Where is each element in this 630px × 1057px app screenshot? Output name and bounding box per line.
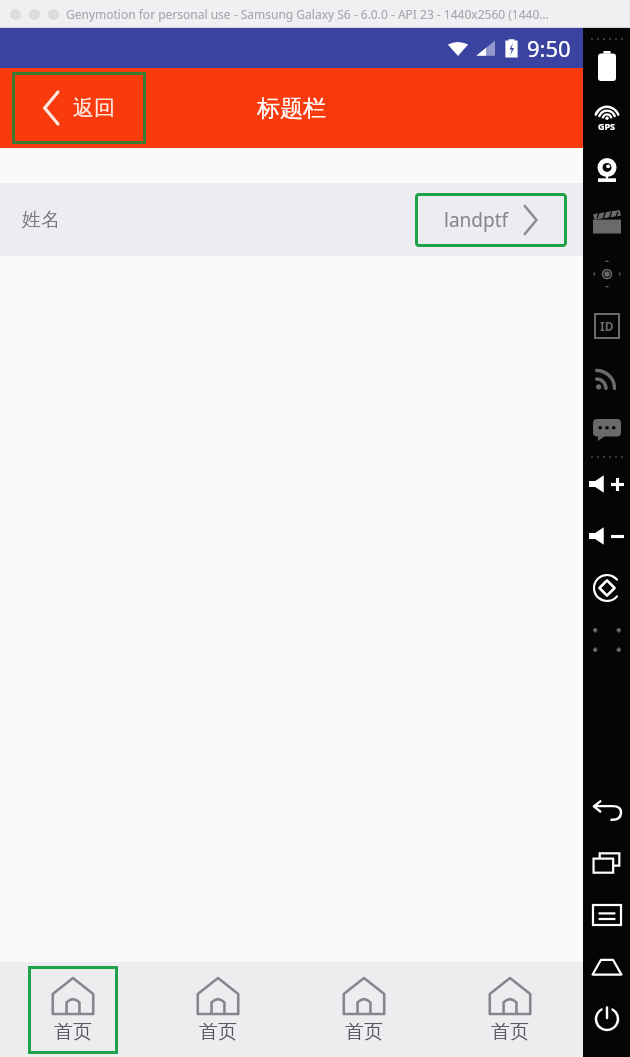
button[interactable]: Emulator control	[583, 889, 630, 941]
staticText: GPS	[598, 120, 616, 132]
staticText: 9:50	[527, 33, 571, 63]
staticText: Genymotion for personal use - Samsung Ga…	[66, 6, 549, 22]
staticText: ID	[600, 318, 614, 334]
button[interactable]: 返回	[12, 72, 146, 144]
button[interactable]: Emulator control	[583, 837, 630, 889]
staticText: 首页	[199, 1020, 237, 1044]
button[interactable]: landptf	[415, 193, 567, 247]
button[interactable]: Emulator control	[583, 40, 630, 92]
button[interactable]: 首页	[465, 966, 555, 1054]
button[interactable]: Emulator control	[583, 510, 630, 562]
staticText: 姓名	[22, 208, 60, 232]
button[interactable]: 首页	[319, 966, 409, 1054]
button[interactable]: 首页	[173, 966, 263, 1054]
button[interactable]: Emulator control	[583, 941, 630, 993]
staticText: 标题栏	[257, 94, 326, 123]
button[interactable]: Emulator control	[583, 785, 630, 837]
button[interactable]: 姓名	[0, 183, 583, 256]
staticText: 首页	[54, 1020, 92, 1044]
button[interactable]: Emulator control	[583, 92, 630, 144]
staticText: 首页	[345, 1020, 383, 1044]
staticText: landptf	[444, 207, 509, 233]
button[interactable]: Emulator control	[583, 300, 630, 352]
button[interactable]: Emulator control	[583, 352, 630, 404]
button[interactable]: Emulator control	[583, 404, 630, 456]
button[interactable]: Emulator control	[583, 614, 630, 666]
button[interactable]: 首页	[28, 966, 118, 1054]
button[interactable]: Emulator control	[583, 458, 630, 510]
button[interactable]: Emulator control	[583, 993, 630, 1045]
button[interactable]: Emulator control	[583, 248, 630, 300]
button[interactable]: Emulator control	[583, 196, 630, 248]
button[interactable]: Emulator control	[583, 144, 630, 196]
staticText: 返回	[73, 95, 115, 121]
button[interactable]: Emulator control	[583, 562, 630, 614]
staticText: 首页	[491, 1020, 529, 1044]
